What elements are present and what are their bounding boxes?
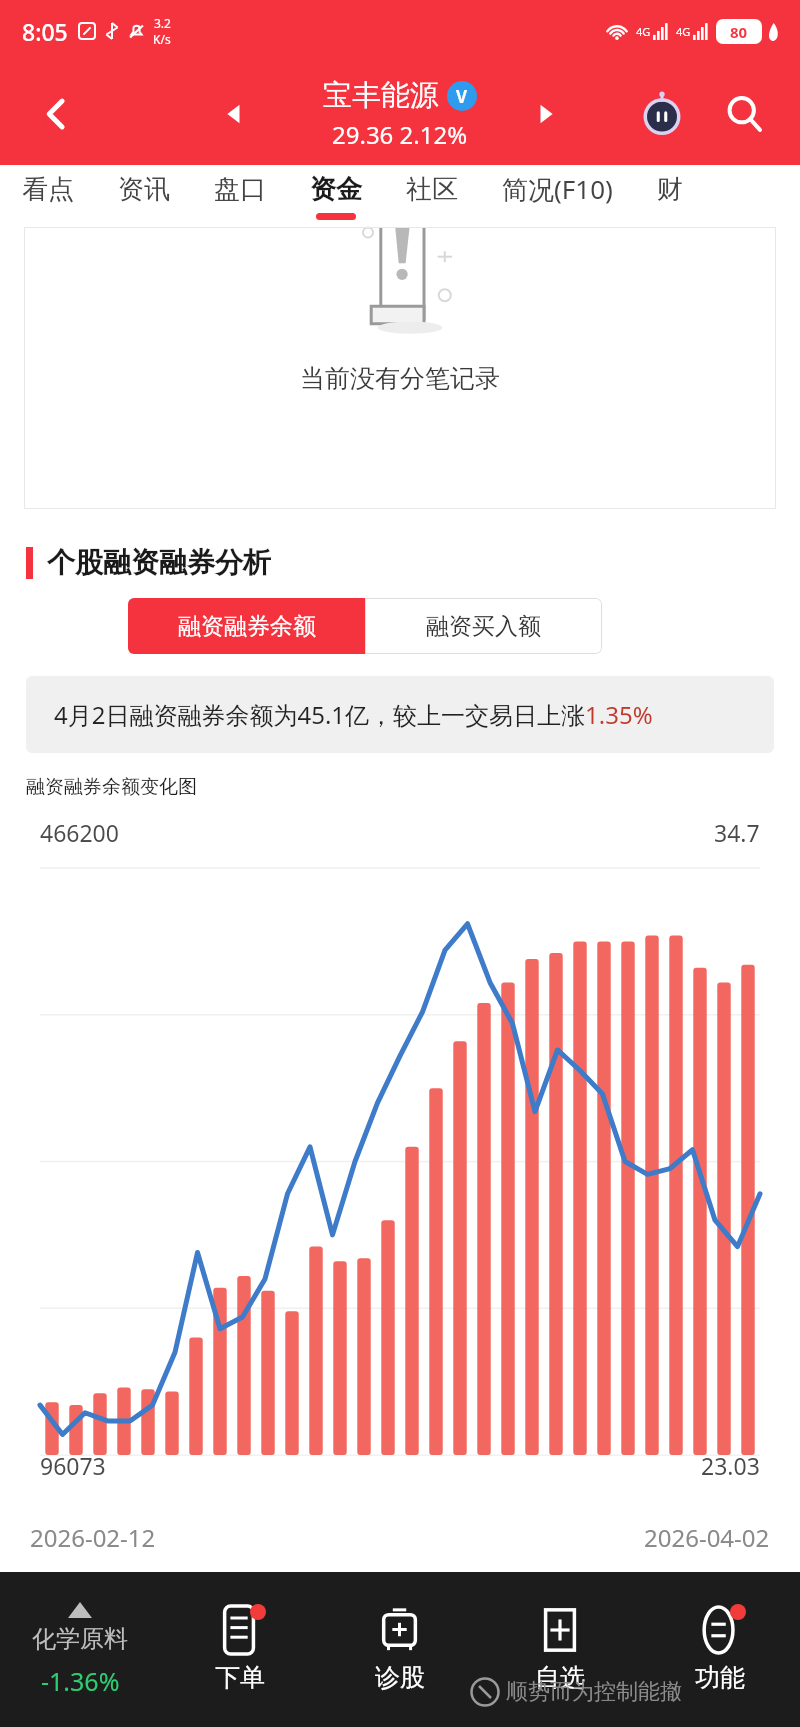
staticText: 融资融券余额 bbox=[178, 612, 316, 641]
staticText: 顺势而为控制能撤 bbox=[506, 1678, 682, 1706]
button[interactable]: 融资买入额 bbox=[365, 598, 602, 654]
staticText: 诊股 bbox=[375, 1662, 425, 1693]
staticText: 当前没有分笔记录 bbox=[300, 363, 500, 394]
staticText: 34.7 bbox=[714, 817, 760, 848]
staticText: 下单 bbox=[215, 1662, 265, 1693]
staticText: 自选 bbox=[535, 1662, 585, 1693]
staticText: 4G bbox=[676, 24, 691, 39]
staticText: 盘口 bbox=[214, 173, 266, 206]
button[interactable]: AI assistant bbox=[634, 86, 690, 142]
staticText: 宝丰能源 bbox=[323, 77, 439, 114]
staticText: 个股融资融券分析 bbox=[47, 545, 271, 580]
staticText: 简况(F10) bbox=[502, 171, 613, 207]
staticText: 资金 bbox=[310, 173, 362, 206]
button[interactable]: 自选 bbox=[480, 1606, 640, 1693]
staticText: 4月2日融资融券余额为45.1亿，较上一交易日上涨1.35% bbox=[54, 698, 653, 731]
staticText: 3.2 bbox=[154, 15, 171, 31]
staticText: 96073 bbox=[40, 1450, 106, 1481]
button[interactable]: Previous stock bbox=[210, 90, 258, 138]
staticText: V bbox=[456, 85, 468, 108]
staticText: -1.36% bbox=[41, 1664, 120, 1698]
button[interactable]: 诊股 bbox=[320, 1606, 480, 1693]
button[interactable]: 财 bbox=[635, 173, 705, 220]
staticText: K/s bbox=[153, 31, 171, 47]
staticText: 融资融券余额变化图 bbox=[26, 775, 197, 799]
staticText: 社区 bbox=[406, 173, 458, 206]
staticText: 8:05 bbox=[22, 16, 68, 47]
button[interactable]: 社区 bbox=[384, 173, 480, 220]
staticText: 功能 bbox=[695, 1662, 745, 1693]
staticText: 融资买入额 bbox=[426, 612, 541, 641]
button[interactable]: 看点 bbox=[0, 173, 96, 220]
staticText: 化学原料 bbox=[32, 1624, 128, 1654]
button[interactable]: 化学原料 bbox=[0, 1602, 160, 1698]
button[interactable]: 简况(F10) bbox=[480, 171, 635, 221]
staticText: 财 bbox=[657, 173, 683, 206]
button[interactable]: Back bbox=[30, 88, 82, 140]
button[interactable]: 功能 bbox=[640, 1606, 800, 1693]
staticText: 2026-04-02 bbox=[644, 1521, 770, 1554]
staticText: 80 bbox=[730, 22, 748, 42]
button[interactable]: Next stock bbox=[522, 90, 570, 138]
button[interactable]: 盘口 bbox=[192, 173, 288, 220]
staticText: 看点 bbox=[22, 173, 74, 206]
button[interactable]: 资金 bbox=[288, 173, 384, 220]
button[interactable]: Search bbox=[716, 86, 772, 142]
staticText: 466200 bbox=[40, 817, 119, 848]
staticText: 23.03 bbox=[701, 1450, 760, 1481]
staticText: 4G bbox=[636, 24, 651, 39]
staticText: 29.36 2.12% bbox=[332, 118, 468, 151]
staticText: 资讯 bbox=[118, 173, 170, 206]
button[interactable]: 资讯 bbox=[96, 173, 192, 220]
button[interactable]: 下单 bbox=[160, 1606, 320, 1693]
button[interactable]: 融资融券余额 bbox=[128, 598, 365, 654]
staticText: 2026-02-12 bbox=[30, 1521, 156, 1554]
